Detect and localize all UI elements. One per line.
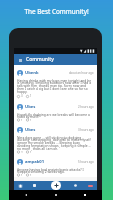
button[interactable]: Comment (26, 119, 29, 121)
staticText: 2 hours ago (78, 105, 94, 109)
button[interactable]: Messages (68, 181, 83, 190)
button[interactable]: Menu (17, 57, 23, 63)
staticText: Ubes (25, 127, 36, 133)
staticText: 1 (30, 151, 32, 153)
staticText: 1 (30, 174, 32, 176)
staticText: Ubes (25, 104, 36, 110)
button[interactable]: Ubes (14, 99, 97, 122)
button[interactable]: ampak01 (14, 154, 97, 177)
staticText: 3 (21, 94, 23, 98)
button[interactable]: Comment (26, 174, 29, 176)
staticText: Anyone having bad anxiety/panic attacks?… (17, 167, 94, 174)
button[interactable]: Create post (51, 181, 61, 190)
staticText: Having drinks with my boys man tonight a… (17, 78, 94, 94)
staticText: 1 (30, 94, 32, 98)
staticText: 1 (21, 174, 23, 176)
button[interactable]: Groups (27, 181, 42, 190)
staticText: 5 hours ago (78, 160, 94, 164)
button[interactable]: Home (53, 192, 59, 198)
staticText: Community (26, 56, 54, 63)
staticText: Hopefully dodging arc we breaks will bec… (17, 112, 94, 119)
staticText: 1 (21, 119, 23, 121)
button[interactable]: Recent apps (82, 192, 88, 198)
button[interactable]: Like (17, 151, 20, 153)
staticText: The Best Community! (0, 7, 113, 16)
button[interactable]: Ubenk (14, 65, 97, 99)
staticText: ampak01 (25, 159, 45, 165)
staticText: 1 (30, 119, 32, 121)
button[interactable]: Like (17, 95, 20, 98)
button[interactable]: Notifications (83, 181, 97, 190)
staticText: about an hour ago (69, 71, 94, 75)
staticText: Nine days gone ... still sticking to dod… (17, 135, 94, 151)
staticText: 3 hours ago (78, 128, 94, 132)
button[interactable]: Home (14, 181, 27, 190)
button[interactable]: Ubes (14, 122, 97, 154)
button[interactable]: Comment (26, 151, 29, 153)
staticText: 2 (21, 151, 23, 153)
staticText: Ubenk (25, 70, 39, 76)
button[interactable]: Like (17, 119, 20, 121)
button[interactable]: Back (23, 192, 29, 198)
button[interactable]: Comment (26, 95, 29, 98)
button[interactable]: Like (17, 174, 20, 176)
